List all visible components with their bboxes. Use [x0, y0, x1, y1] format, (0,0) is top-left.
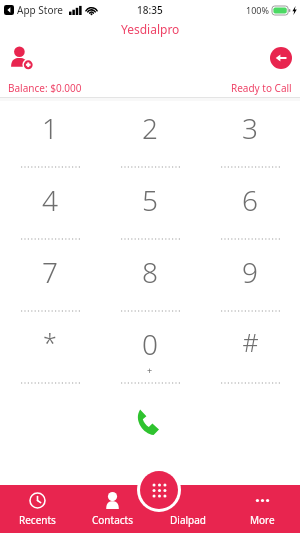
button[interactable]: 8: [100, 250, 200, 322]
staticText: 4: [42, 181, 58, 219]
staticText: Dialpad: [170, 513, 206, 527]
staticText: 0: [142, 325, 158, 363]
button[interactable]: Dialpad: [150, 485, 225, 533]
button[interactable]: 4: [0, 178, 100, 250]
button[interactable]: Call: [127, 398, 173, 444]
button[interactable]: #: [200, 322, 300, 394]
staticText: 1: [42, 109, 58, 147]
staticText: Yesdialpro: [121, 21, 180, 37]
staticText: Recents: [19, 513, 56, 527]
button[interactable]: More: [225, 485, 300, 533]
staticText: #: [242, 325, 259, 359]
staticText: 3: [242, 109, 258, 147]
button[interactable]: Dialpad: [140, 471, 178, 509]
staticText: *: [43, 325, 57, 359]
staticText: 7: [42, 253, 58, 291]
button[interactable]: 9: [200, 250, 300, 322]
staticText: 18:35: [137, 3, 163, 17]
button[interactable]: Contacts: [75, 485, 150, 533]
button[interactable]: *: [0, 322, 100, 394]
staticText: 6: [242, 181, 258, 219]
button[interactable]: 3: [200, 106, 300, 178]
button[interactable]: 6: [200, 178, 300, 250]
button[interactable]: Recents: [0, 485, 75, 533]
button[interactable]: Add contact: [5, 41, 39, 75]
staticText: 2: [142, 109, 158, 147]
button[interactable]: 2: [100, 106, 200, 178]
button[interactable]: 5: [100, 178, 200, 250]
button[interactable]: 7: [0, 250, 100, 322]
staticText: More: [250, 513, 275, 527]
staticText: 8: [142, 253, 158, 291]
staticText: 9: [242, 253, 258, 291]
staticText: 100%: [246, 4, 269, 16]
button[interactable]: 1: [0, 106, 100, 178]
staticText: +: [147, 364, 153, 376]
button[interactable]: 0: [100, 322, 200, 394]
button[interactable]: Back: [270, 47, 292, 69]
staticText: Balance: $0.000: [8, 81, 82, 95]
staticText: 5: [142, 181, 158, 219]
staticText: Ready to Call: [231, 81, 292, 95]
staticText: App Store: [17, 3, 64, 17]
staticText: Contacts: [92, 513, 133, 527]
